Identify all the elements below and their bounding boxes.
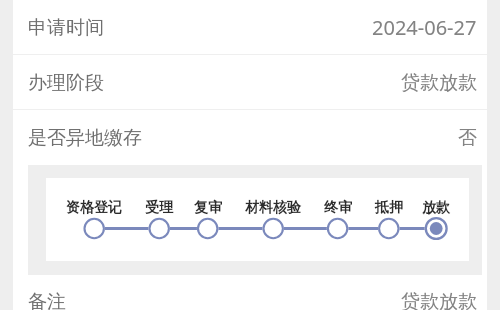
staticText: 复审 [168,199,248,217]
staticText: 终审 [298,199,378,217]
staticText: 放款 [396,199,476,217]
staticText: 受理 [119,199,199,217]
staticText: 抵押 [349,199,429,217]
staticText: 办理阶段 [28,71,104,95]
staticText: 2024-06-27 [372,14,477,41]
staticText: 否 [458,126,477,150]
button[interactable]: 申请时间 [13,0,487,55]
staticText: 申请时间 [28,16,104,40]
staticText: 是否异地缴存 [28,126,142,150]
button[interactable]: 备注 [13,275,487,310]
staticText: 资格登记 [54,199,134,217]
staticText: 贷款放款 [401,71,477,95]
button[interactable]: 是否异地缴存 [13,110,487,165]
other: 办理进度 [46,178,469,261]
button[interactable]: 办理阶段 [13,55,487,110]
staticText: 备注 [28,290,66,310]
staticText: 贷款放款 [401,290,477,310]
staticText: 材料核验 [233,199,313,217]
